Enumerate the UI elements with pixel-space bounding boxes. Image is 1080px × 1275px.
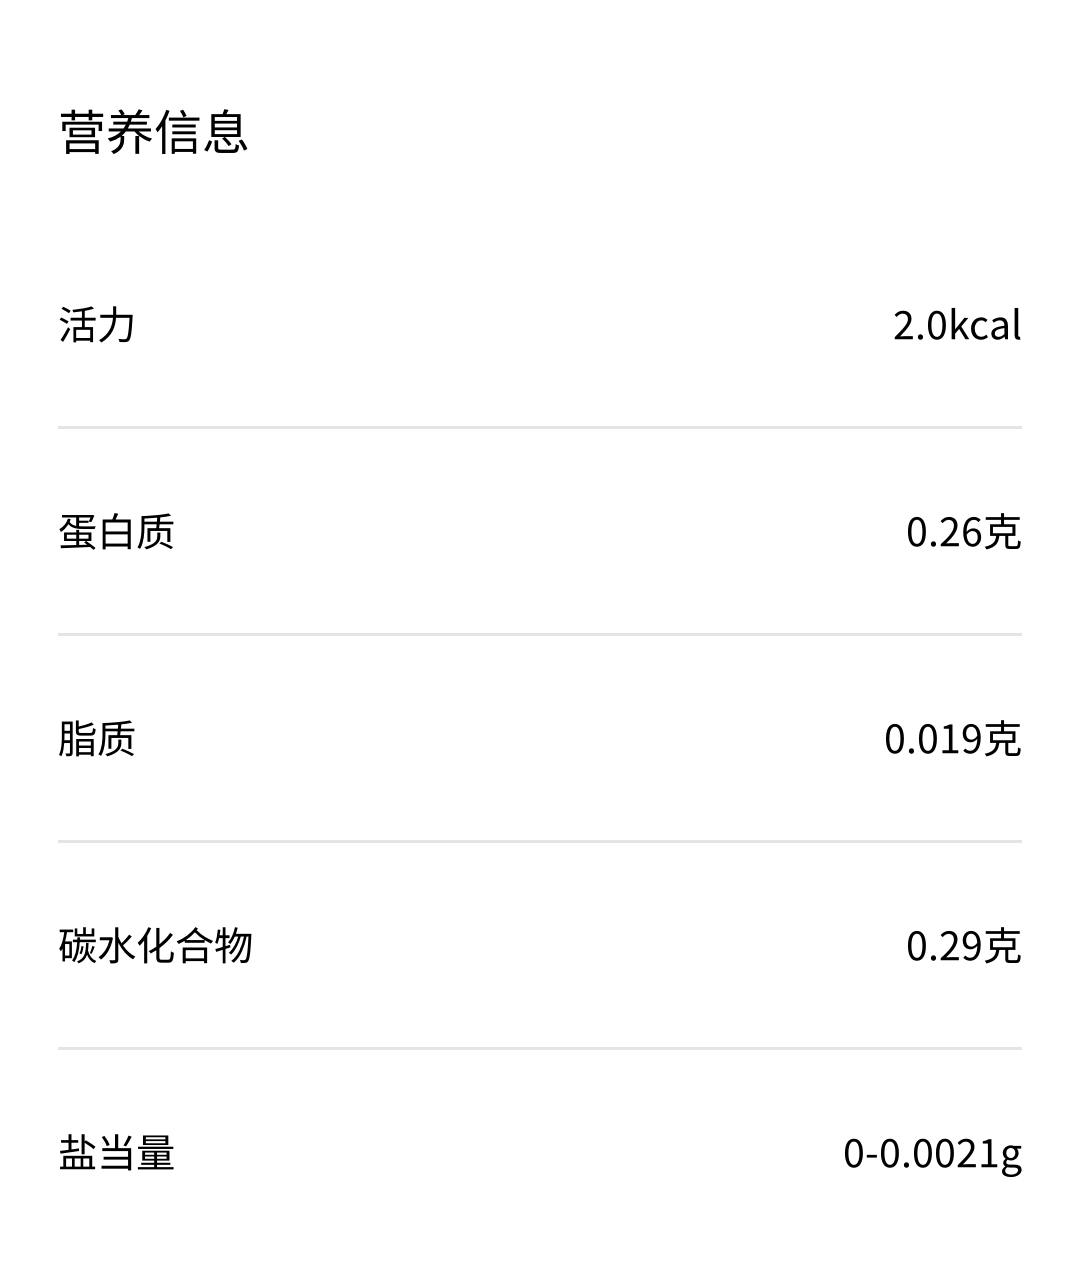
staticText: 0.29克 — [906, 914, 1022, 971]
staticText: 0-0.0021g — [843, 1121, 1022, 1178]
staticText: 营养信息 — [58, 94, 250, 164]
staticText: 盐当量 — [58, 1121, 175, 1178]
button[interactable]: 脂质 — [0, 636, 1080, 843]
staticText: 碳水化合物 — [58, 914, 253, 971]
button[interactable]: 活力 — [0, 222, 1080, 429]
button[interactable]: 碳水化合物 — [0, 843, 1080, 1050]
staticText: 2.0kcal — [893, 293, 1022, 350]
staticText: 脂质 — [58, 707, 136, 764]
staticText: 蛋白质 — [58, 500, 175, 557]
button[interactable]: 盐当量 — [0, 1050, 1080, 1257]
staticText: 活力 — [58, 293, 136, 350]
staticText: 0.019克 — [884, 707, 1022, 764]
staticText: 0.26克 — [906, 500, 1022, 557]
button[interactable]: 蛋白质 — [0, 429, 1080, 636]
